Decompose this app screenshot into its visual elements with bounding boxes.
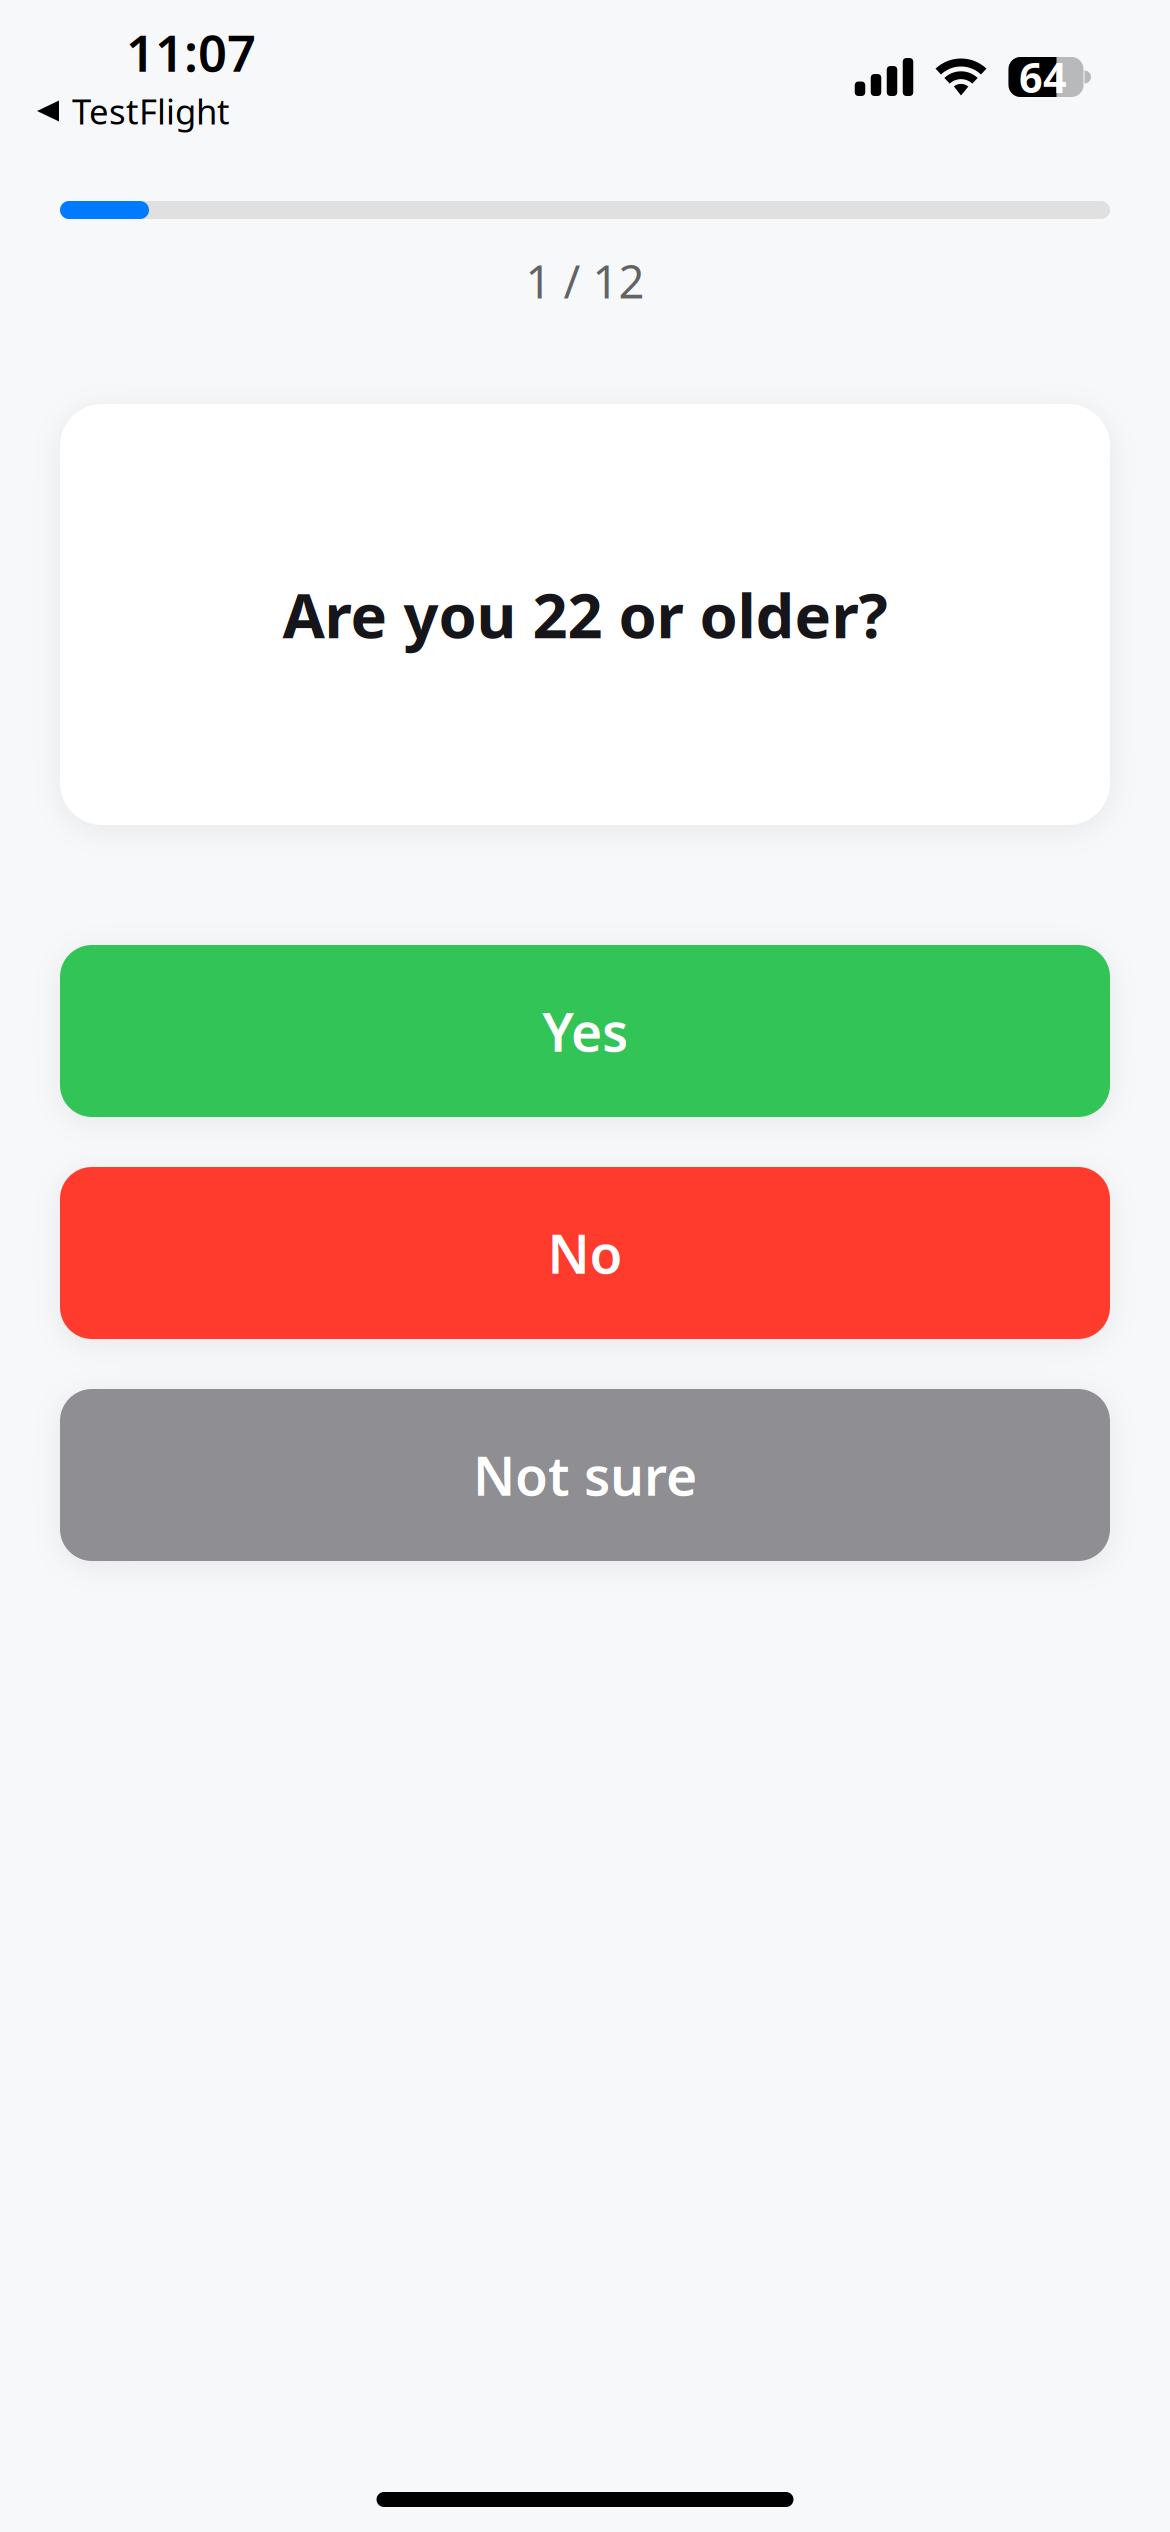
staticText: 64 [1019, 50, 1067, 104]
staticText: 1 / 12 [525, 251, 644, 311]
button[interactable]: No [60, 1167, 1110, 1339]
button[interactable]: Yes [60, 945, 1110, 1117]
staticText: Yes [542, 996, 628, 1066]
button[interactable]: Not sure [60, 1389, 1110, 1561]
staticText: Are you 22 or older? [282, 574, 887, 655]
staticText: TestFlight [72, 88, 230, 134]
staticText: Not sure [473, 1440, 697, 1510]
staticText: 11:07 [126, 18, 256, 86]
button[interactable]: TestFlight [0, 89, 254, 133]
staticText: No [547, 1218, 622, 1288]
